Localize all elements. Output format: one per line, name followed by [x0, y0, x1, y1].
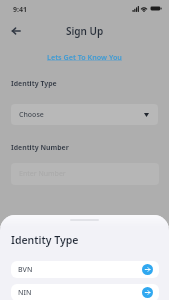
- staticText: 9:41: [13, 5, 27, 15]
- staticText: Lets Get To Know You: [47, 52, 122, 62]
- staticText: Enter Number: [19, 169, 66, 179]
- staticText: Choose: [19, 110, 44, 120]
- staticText: NIN: [18, 288, 32, 298]
- button[interactable]: NIN: [11, 284, 159, 300]
- staticText: Identity Type: [11, 233, 79, 247]
- staticText: Identity Number: [11, 143, 69, 152]
- staticText: Identity Type: [11, 79, 57, 88]
- button[interactable]: Back: [5, 20, 26, 41]
- staticText: Sign Up: [66, 24, 104, 38]
- button[interactable]: Choose: [11, 104, 158, 125]
- staticText: BVN: [18, 265, 33, 275]
- button[interactable]: BVN: [11, 261, 159, 278]
- button[interactable]: Lets Get To Know You: [43, 50, 126, 64]
